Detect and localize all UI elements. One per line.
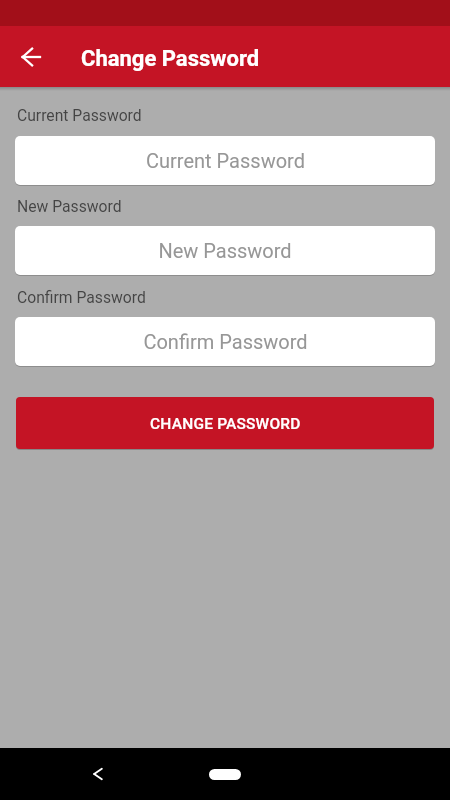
button[interactable]: Back [81,757,115,791]
staticText: Current Password [17,106,142,124]
staticText: Current Password [146,149,305,172]
button[interactable]: Confirm Password [15,317,435,366]
button[interactable]: Home [209,769,241,780]
staticText: New Password [158,239,292,262]
button[interactable]: New Password [15,226,435,275]
button[interactable]: Current Password [15,136,435,185]
staticText: Confirm Password [143,330,308,353]
staticText: Confirm Password [17,288,146,306]
button[interactable]: CHANGE PASSWORD [16,397,434,449]
staticText: CHANGE PASSWORD [150,415,301,433]
button[interactable]: Back [7,33,55,81]
staticText: New Password [17,197,122,215]
staticText: Change Password [81,46,260,72]
